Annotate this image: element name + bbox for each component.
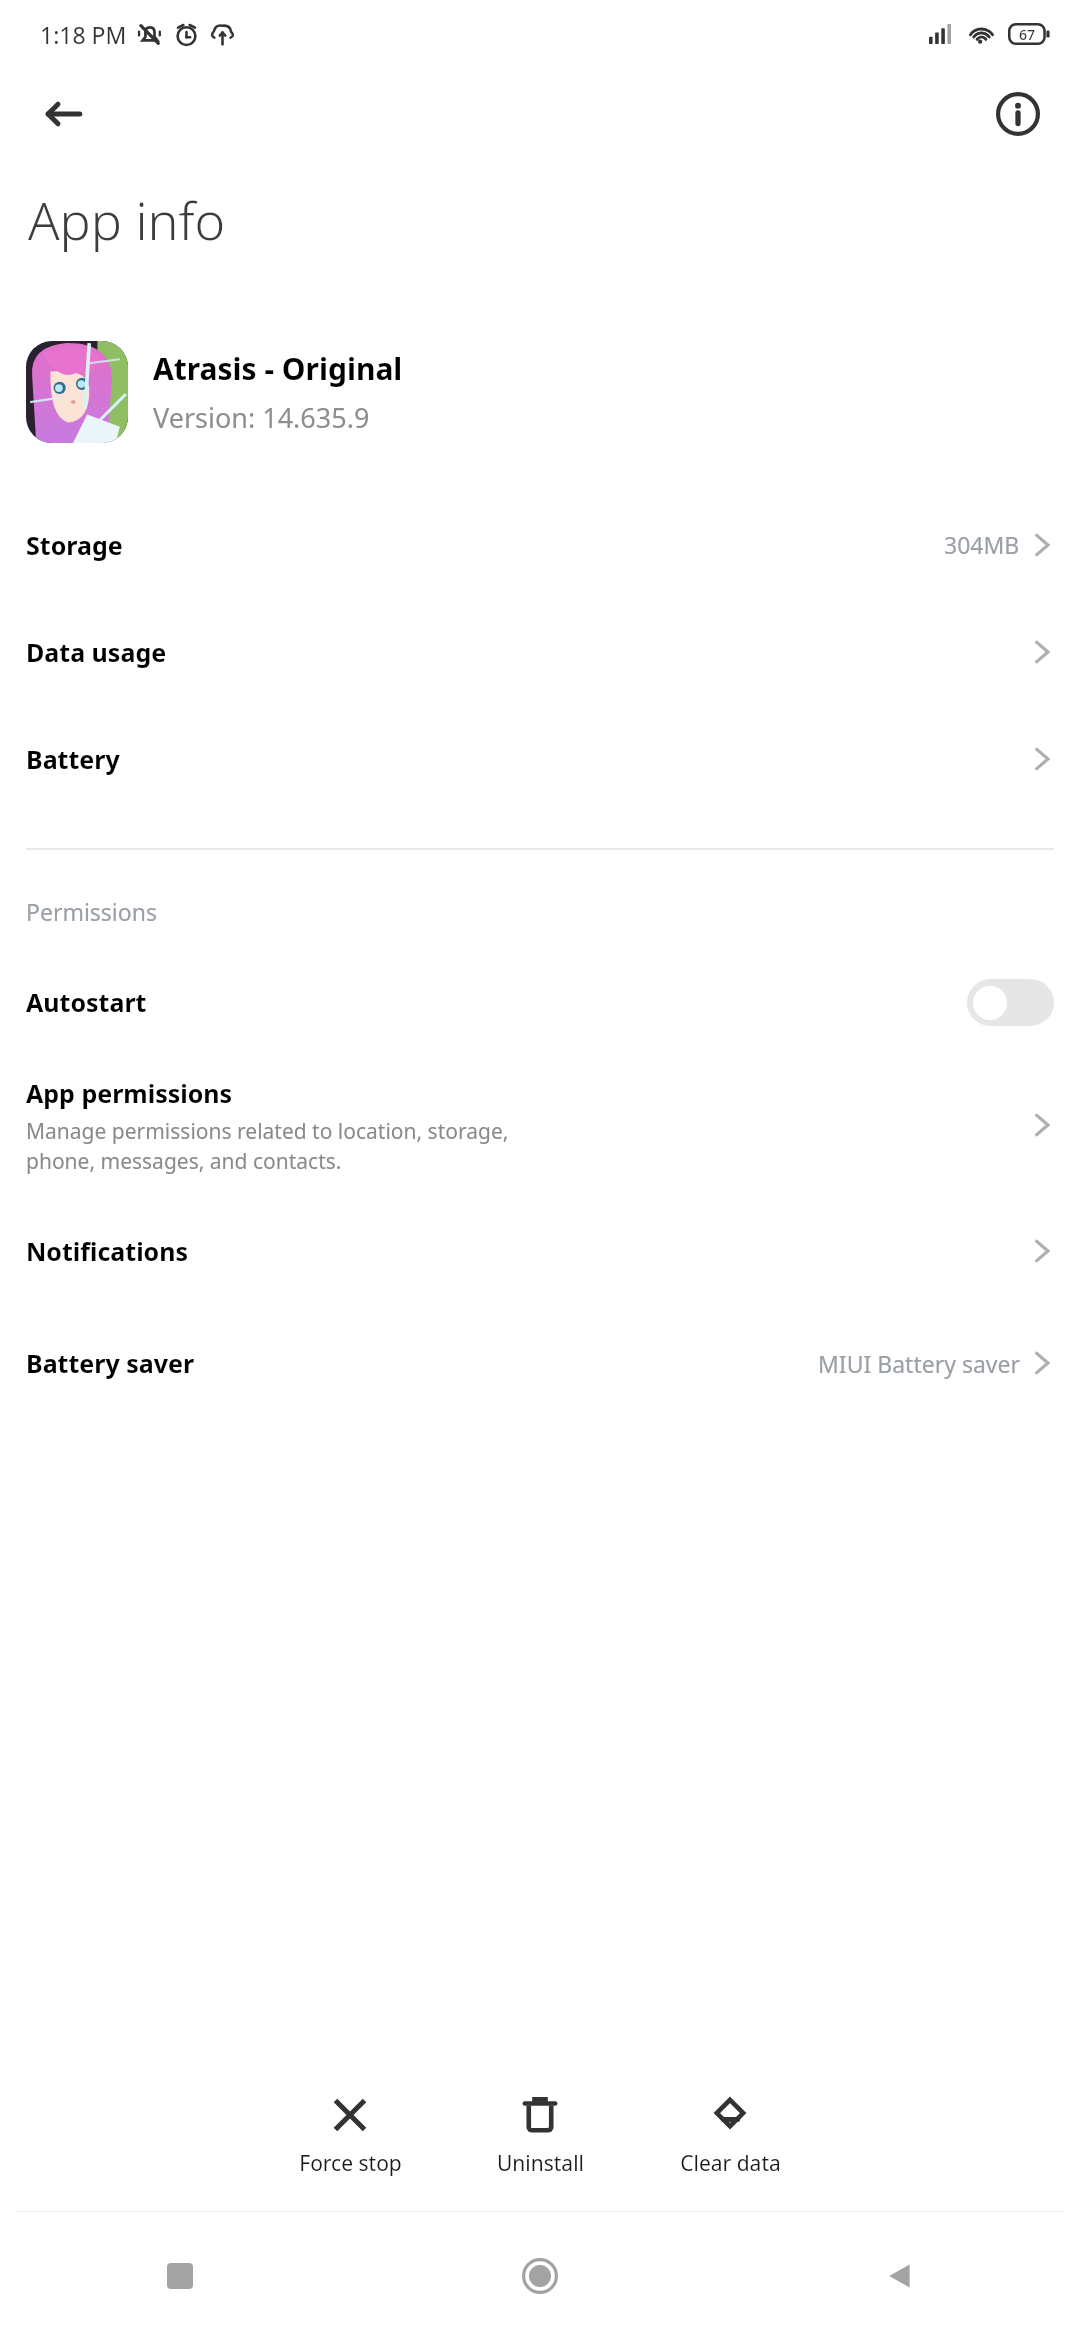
button[interactable]: Battery saver bbox=[0, 1307, 1080, 1419]
staticText: Battery saver bbox=[26, 1346, 195, 1380]
button[interactable]: Back bbox=[28, 78, 100, 150]
button[interactable]: Force stop bbox=[275, 2087, 425, 2184]
staticText: Manage permissions related to location, … bbox=[26, 1117, 509, 1175]
staticText: Permissions bbox=[26, 896, 157, 927]
button[interactable]: Data usage bbox=[0, 598, 1080, 705]
button[interactable]: Notifications bbox=[0, 1195, 1080, 1307]
button[interactable]: Battery bbox=[0, 705, 1080, 812]
button[interactable]: Clear data bbox=[655, 2087, 805, 2184]
staticText: 1:18 PM bbox=[40, 19, 127, 50]
button[interactable]: App permissions bbox=[0, 1055, 1080, 1195]
button[interactable]: Recents bbox=[0, 2212, 360, 2340]
button[interactable]: Storage bbox=[0, 491, 1080, 598]
staticText: App info bbox=[28, 184, 226, 255]
button[interactable]: App details bbox=[982, 78, 1054, 150]
button[interactable]: Home bbox=[360, 2212, 720, 2340]
staticText: 304MB bbox=[944, 529, 1020, 560]
staticText: Storage bbox=[26, 528, 123, 562]
staticText: Force stop bbox=[299, 2149, 402, 2178]
staticText: Atrasis - Original bbox=[153, 348, 403, 389]
staticText: Version: 14.635.9 bbox=[153, 399, 370, 436]
staticText: App permissions bbox=[26, 1076, 233, 1110]
staticText: Clear data bbox=[680, 2149, 781, 2178]
staticText: Notifications bbox=[26, 1234, 189, 1268]
staticText: Uninstall bbox=[497, 2149, 584, 2178]
button[interactable]: Back bbox=[720, 2212, 1080, 2340]
button[interactable]: Uninstall bbox=[465, 2087, 615, 2184]
staticText: 67 bbox=[1019, 25, 1036, 44]
staticText: Battery bbox=[26, 742, 120, 776]
staticText: Data usage bbox=[26, 635, 167, 669]
staticText: MIUI Battery saver bbox=[818, 1348, 1020, 1379]
button[interactable]: Autostart bbox=[0, 949, 1080, 1055]
staticText: Autostart bbox=[26, 985, 967, 1019]
